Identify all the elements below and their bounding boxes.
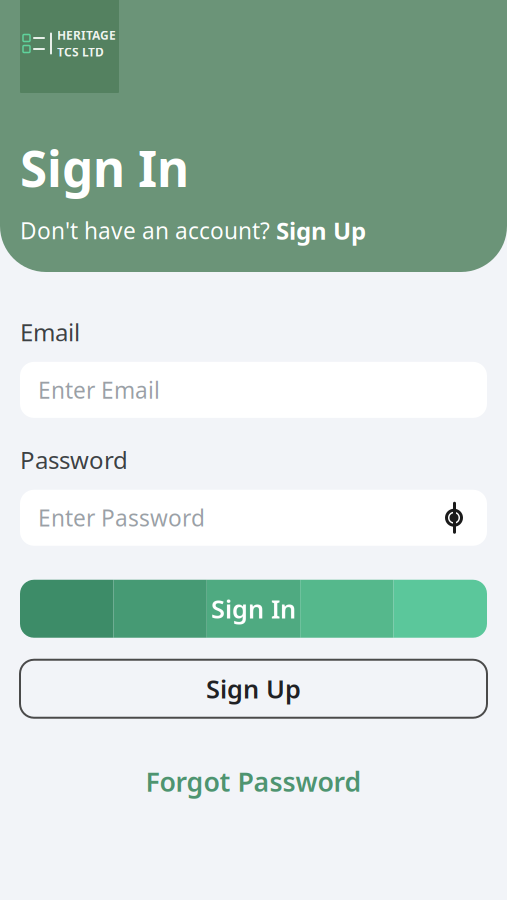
button[interactable]: Forgot Password <box>20 756 487 807</box>
staticText: Don't have an account? <box>20 215 276 245</box>
button[interactable]: Sign Up <box>276 214 366 246</box>
staticText: HERITAGE <box>57 27 116 43</box>
staticText: Sign In <box>211 592 296 625</box>
staticText: Email <box>20 316 80 348</box>
button[interactable]: Sign In <box>20 580 487 638</box>
staticText: Sign Up <box>276 214 366 246</box>
staticText: Enter Password <box>38 503 205 533</box>
staticText: Sign In <box>20 135 189 200</box>
button[interactable]: Sign Up <box>20 660 487 718</box>
button[interactable]: Enter Password <box>20 490 487 546</box>
staticText: Sign Up <box>206 672 301 705</box>
staticText: Password <box>20 444 128 476</box>
staticText: TCS LTD <box>57 44 104 60</box>
staticText: Enter Email <box>38 375 160 405</box>
staticText: Forgot Password <box>145 764 361 799</box>
button[interactable]: Enter Email <box>20 362 487 418</box>
